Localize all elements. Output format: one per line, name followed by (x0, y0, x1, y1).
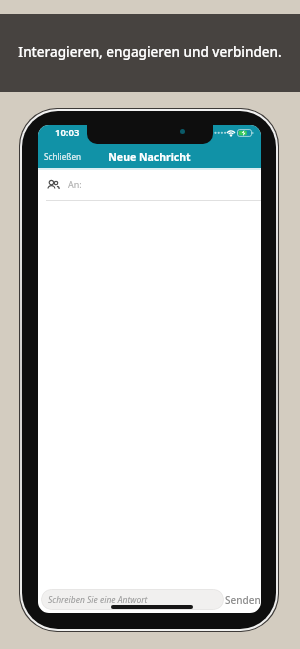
staticText: Schließen (44, 151, 82, 162)
staticText: 10:03 (55, 126, 80, 139)
staticText: An: (68, 178, 82, 190)
staticText: Interagieren, engagieren und verbinden. (0, 43, 300, 61)
staticText: Senden (225, 593, 261, 607)
staticText: Neue Nachricht (38, 150, 261, 164)
staticText: Schreiben Sie eine Antwort (48, 594, 148, 606)
button[interactable]: Schreiben Sie eine Antwort (41, 589, 224, 610)
button[interactable]: Schließen (44, 151, 82, 162)
button[interactable]: An: (68, 178, 82, 190)
button[interactable]: Senden (225, 590, 261, 610)
